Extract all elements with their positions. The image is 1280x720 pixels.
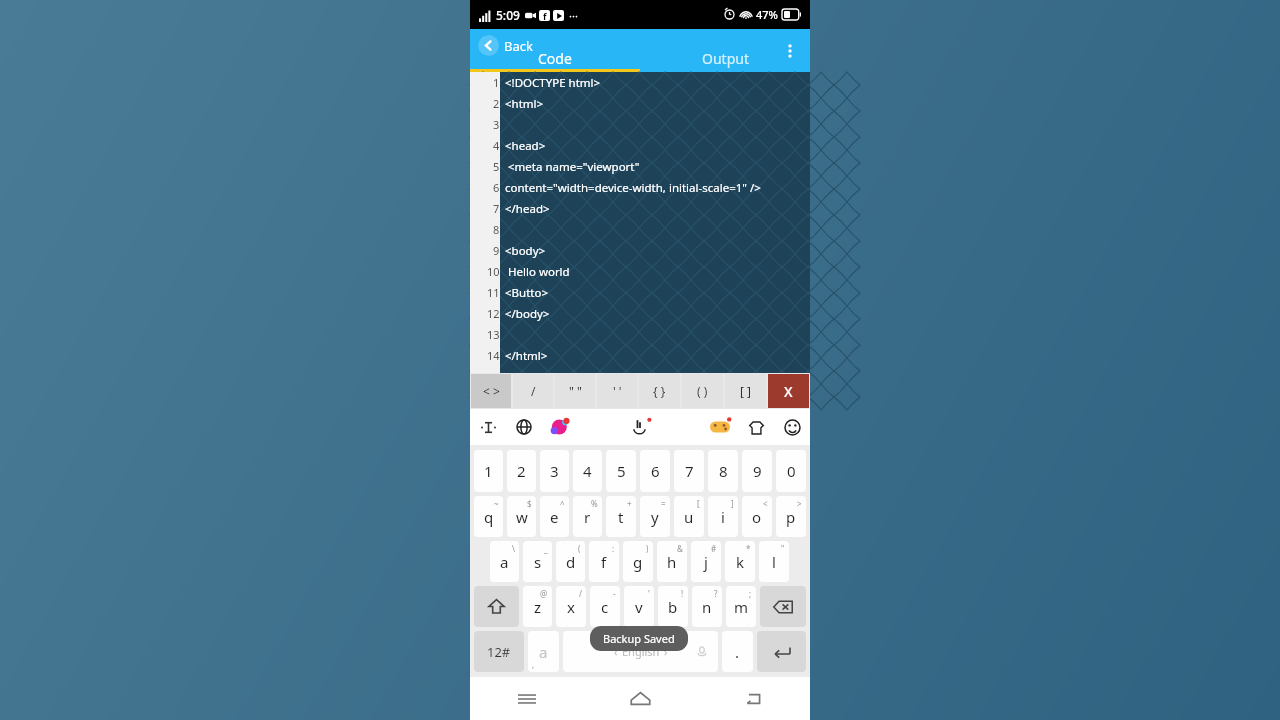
button[interactable]: 6 <box>640 450 670 492</box>
button[interactable]: t <box>606 496 636 537</box>
button[interactable]: ' ' <box>597 374 637 408</box>
button[interactable]: Recent apps <box>470 677 584 720</box>
button[interactable]: { } <box>639 374 680 408</box>
staticText: ' <box>648 588 650 599</box>
staticText: > <box>797 498 802 509</box>
staticText: < <box>763 498 768 509</box>
button[interactable]: / <box>513 374 553 408</box>
staticText: 10 <box>487 264 500 279</box>
button[interactable]: Text cursor <box>470 409 506 445</box>
staticText: <Butto> <box>505 285 548 301</box>
button[interactable]: 3 <box>540 450 569 492</box>
staticText: : <box>612 543 615 554</box>
staticText: @ <box>540 588 548 599</box>
staticText: _ <box>544 543 548 554</box>
staticText: ! <box>681 588 684 599</box>
button[interactable]: e <box>540 496 569 537</box>
button[interactable]: j <box>691 541 721 582</box>
staticText: u <box>684 507 694 527</box>
button[interactable]: 8 <box>708 450 738 492</box>
button[interactable]: m <box>726 586 756 627</box>
button[interactable]: u <box>674 496 704 537</box>
button[interactable]: h <box>657 541 687 582</box>
button[interactable]: x <box>556 586 586 627</box>
button[interactable]: d <box>556 541 585 582</box>
staticText: { } <box>653 383 666 399</box>
button[interactable]: ‹ <box>563 631 718 672</box>
staticText: ; <box>749 588 752 599</box>
button[interactable]: 1 <box>470 72 810 373</box>
button[interactable]: v <box>624 586 654 627</box>
staticText: 2 <box>493 96 500 111</box>
button[interactable]: z <box>523 586 552 627</box>
staticText: h <box>667 552 677 572</box>
button[interactable]: Backspace <box>760 586 806 627</box>
button[interactable]: Emoji <box>774 409 810 445</box>
button[interactable]: Games <box>702 409 738 445</box>
button[interactable]: l <box>759 541 789 582</box>
button[interactable]: . <box>722 631 753 672</box>
staticText: English <box>622 644 660 659</box>
button[interactable]: s <box>523 541 552 582</box>
button[interactable]: a <box>490 541 519 582</box>
button[interactable]: Home <box>584 677 697 720</box>
button[interactable]: Handwriting <box>622 409 658 445</box>
button[interactable]: q <box>474 496 503 537</box>
button[interactable]: k <box>725 541 755 582</box>
staticText: & <box>677 543 683 554</box>
button[interactable]: 1 <box>474 450 503 492</box>
button[interactable]: [ ] <box>725 374 766 408</box>
button[interactable]: n <box>692 586 722 627</box>
button[interactable]: 2 <box>507 450 536 492</box>
button[interactable]: p <box>776 496 806 537</box>
staticText: 5 <box>493 159 500 174</box>
staticText: i <box>721 507 725 527</box>
staticText: + <box>627 498 632 509</box>
staticText: ^ <box>560 498 565 509</box>
button[interactable]: b <box>658 586 688 627</box>
button[interactable]: ( ) <box>682 374 723 408</box>
button[interactable]: Code <box>470 29 640 72</box>
staticText: ] <box>731 498 734 509</box>
button[interactable]: 5 <box>606 450 636 492</box>
button[interactable]: 9 <box>742 450 772 492</box>
button[interactable]: " " <box>555 374 595 408</box>
staticText: 47% <box>756 7 778 22</box>
button[interactable]: y <box>640 496 670 537</box>
button[interactable]: < > <box>471 374 511 408</box>
button[interactable]: 12# <box>474 631 524 672</box>
button[interactable]: Enter <box>757 631 806 672</box>
button[interactable]: g <box>623 541 653 582</box>
staticText: ( <box>578 543 581 554</box>
staticText: ··· <box>569 8 578 23</box>
staticText: o <box>752 507 762 527</box>
button[interactable]: More options <box>774 35 806 67</box>
button[interactable]: w <box>507 496 536 537</box>
button[interactable]: Stickers <box>542 409 578 445</box>
staticText: 3 <box>493 117 500 132</box>
staticText: 9 <box>493 243 500 258</box>
button[interactable]: o <box>742 496 772 537</box>
button[interactable]: Shift <box>474 586 519 627</box>
staticText: <html> <box>505 96 544 112</box>
button[interactable]: X <box>768 374 809 408</box>
staticText: Backup Saved <box>603 631 675 646</box>
staticText: 8 <box>493 222 500 237</box>
button[interactable]: f <box>589 541 619 582</box>
button[interactable]: 7 <box>674 450 704 492</box>
button[interactable]: 4 <box>573 450 602 492</box>
button[interactable]: c <box>590 586 620 627</box>
button[interactable]: Language <box>506 409 542 445</box>
staticText: " " <box>569 383 582 399</box>
staticText: [ ] <box>740 383 752 399</box>
button[interactable]: Output <box>640 29 810 72</box>
staticText: 6 <box>493 180 500 195</box>
button[interactable]: Back <box>478 35 539 56</box>
button[interactable]: r <box>573 496 602 537</box>
button[interactable]: a <box>528 631 559 672</box>
button[interactable]: Themes <box>738 409 774 445</box>
staticText: y <box>651 507 659 527</box>
button[interactable]: i <box>708 496 738 537</box>
button[interactable]: 0 <box>776 450 806 492</box>
button[interactable]: Back <box>697 677 810 720</box>
